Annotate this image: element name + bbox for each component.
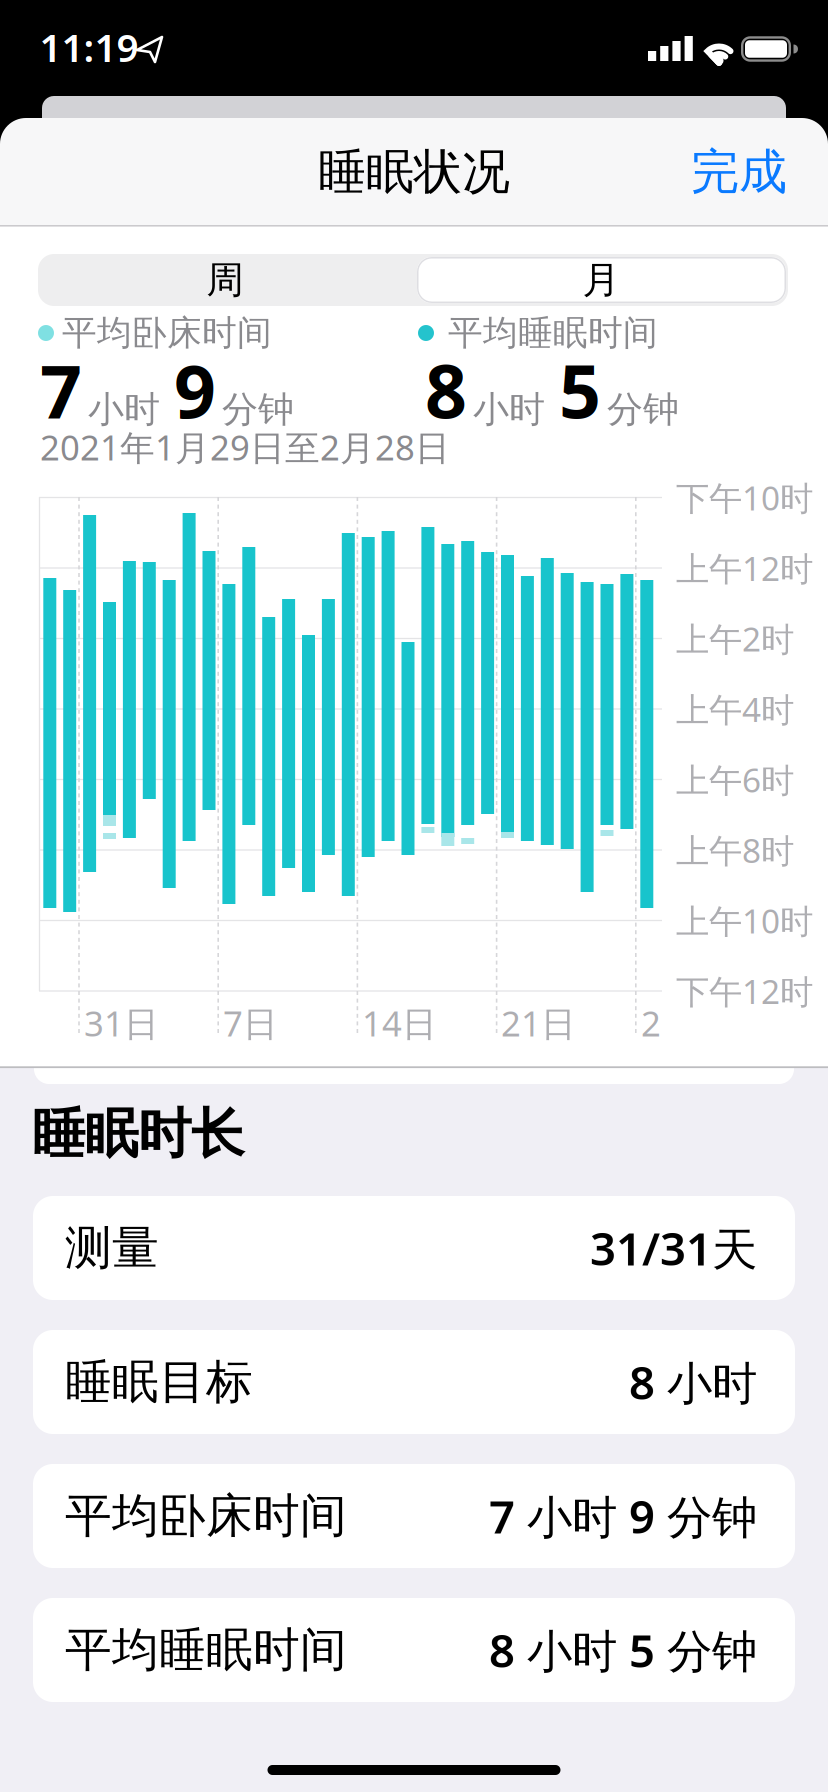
button[interactable]: 周 [40,254,410,306]
staticText: 31日 [84,1000,159,1046]
staticText: 31/31天 [590,1218,757,1278]
staticText: 9 [174,341,216,439]
staticText: 14日 [362,1000,437,1046]
staticText: 8 小时 5 分钟 [489,1620,757,1680]
staticText: 7 小时 9 分钟 [489,1486,757,1546]
staticText: 上午4时 [676,687,794,731]
staticText: 2021年1月29日至2月28日 [40,424,450,470]
staticText: 月 [582,257,619,303]
staticText: 测量 [65,1219,159,1277]
button[interactable]: 平均睡眠时间 [33,1598,795,1702]
staticText: 下午12时 [676,969,813,1013]
staticText: 睡眠目标 [65,1353,253,1411]
staticText: 平均卧床时间 [62,312,272,354]
staticText: 11:19 [39,21,138,73]
staticText: 睡眠状况 [318,142,510,201]
staticText: 小时 [88,387,160,432]
staticText: 平均卧床时间 [65,1487,347,1545]
button[interactable]: 平均卧床时间 [33,1464,795,1568]
staticText: 分钟 [607,387,679,432]
staticText: 平均睡眠时间 [65,1621,347,1679]
staticText: 小时 [473,387,545,432]
staticText: 7日 [223,1000,278,1046]
staticText: 分钟 [222,387,294,432]
button[interactable]: 测量 [33,1196,795,1300]
button[interactable]: 睡眠目标 [33,1330,795,1434]
staticText: 2 [641,1000,661,1046]
staticText: 7 [40,341,82,439]
staticText: 8 小时 [629,1352,757,1412]
staticText: 8 [425,341,467,439]
staticText: 5 [559,341,601,439]
staticText: 上午12时 [676,546,813,590]
button[interactable]: 月 [416,254,786,306]
staticText: 上午6时 [676,757,794,802]
staticText: 上午8时 [676,828,794,872]
staticText: 上午10时 [676,898,813,943]
staticText: 21日 [501,1000,576,1046]
staticText: 上午2时 [676,616,794,661]
staticText: 周 [206,257,243,303]
button[interactable]: 完成 [627,137,787,207]
staticText: 睡眠时长 [32,1101,244,1167]
staticText: 平均睡眠时间 [448,312,658,354]
staticText: 下午10时 [676,475,813,520]
staticText: 完成 [691,142,787,201]
